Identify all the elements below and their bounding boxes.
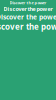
staticText: Discover the power [9,0,46,5]
staticText: Discover the power [3,5,52,12]
staticText: Discover the power [0,12,56,21]
staticText: Discover the power [0,21,56,32]
